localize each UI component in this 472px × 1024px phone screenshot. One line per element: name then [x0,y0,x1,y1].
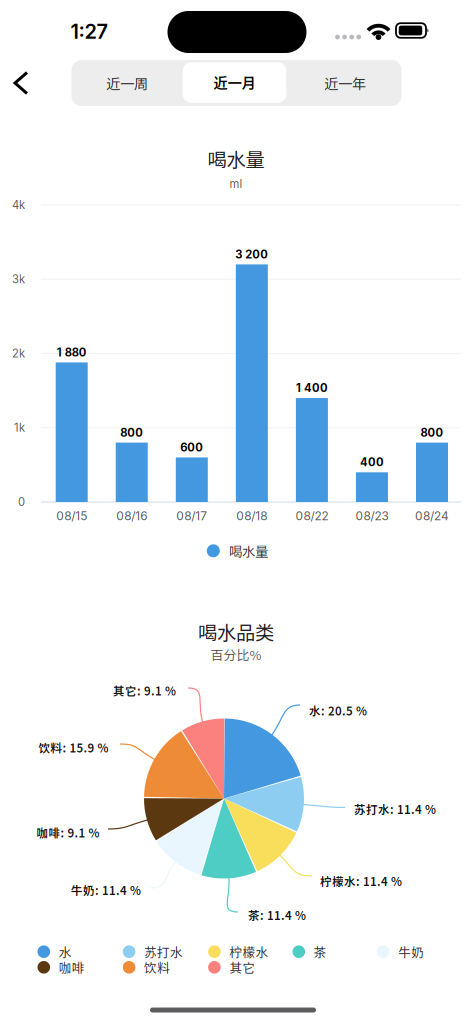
staticText: 08/18 [236,509,267,523]
staticText: 3k [12,272,25,286]
staticText: 1:27 [70,19,107,44]
staticText: 茶: 11.4 % [248,907,306,923]
staticText: 1 880 [57,346,87,359]
staticText: 1k [14,421,25,435]
staticText: 苏打水: 11.4 % [354,801,436,817]
staticText: 饮料: 15.9 % [38,739,108,756]
staticText: 08/24 [415,509,449,523]
staticText: 喝水量 [229,541,268,560]
button[interactable]: 近一月 [183,62,286,103]
staticText: 其它: 9.1 % [113,682,176,699]
staticText: 0 [18,495,25,509]
staticText: 苏打水 [144,943,183,961]
staticText: 其它 [229,958,255,976]
staticText: 牛奶 [398,943,424,961]
staticText: 茶 [314,943,327,961]
staticText: 4k [12,198,25,212]
staticText: 近一周 [106,73,148,93]
staticText: 水: 20.5 % [309,702,367,719]
staticText: 咖啡 [59,958,85,976]
staticText: 08/23 [355,509,388,523]
staticText: 水 [59,943,72,961]
staticText: 近一年 [324,73,366,93]
staticText: 柠檬水: 11.4 % [320,873,402,889]
staticText: 牛奶: 11.4 % [71,882,141,898]
staticText: 08/15 [56,509,87,523]
staticText: 喝水量 [207,144,264,172]
staticText: 柠檬水 [229,943,268,961]
staticText: 咖啡: 9.1 % [36,824,99,841]
staticText: 1 400 [296,381,328,395]
staticText: 喝水品类 [198,617,274,645]
staticText: 百分比% [210,645,261,664]
staticText: 08/17 [176,509,207,523]
staticText: 600 [180,441,203,454]
staticText: 800 [420,426,443,439]
staticText: 饮料 [144,958,170,976]
staticText: ml [229,177,242,191]
staticText: 800 [120,426,143,439]
staticText: 08/16 [116,509,147,523]
staticText: 近一月 [213,72,255,93]
button[interactable]: 近一年 [292,61,398,105]
staticText: 3 200 [235,248,268,261]
staticText: 08/22 [295,509,328,523]
staticText: 400 [360,455,384,469]
button[interactable]: 近一周 [74,61,180,105]
staticText: 2k [12,347,25,360]
button[interactable]: 返回 [0,0,472,1024]
